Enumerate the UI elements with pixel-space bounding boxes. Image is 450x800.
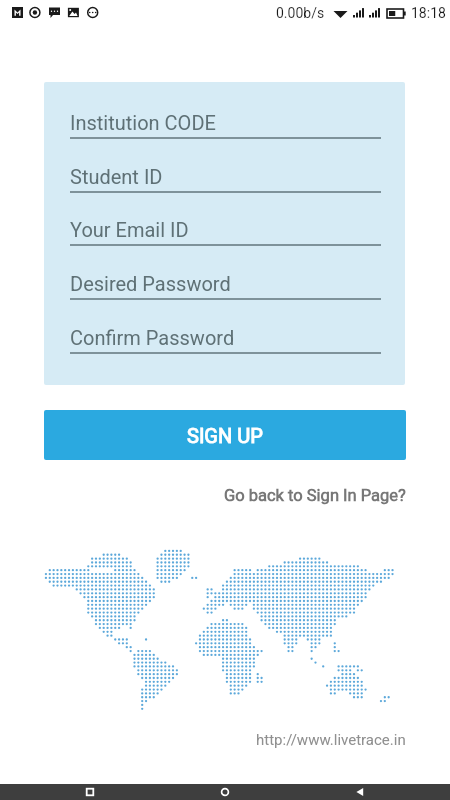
button[interactable]: SIGN UP (44, 410, 406, 460)
staticText: Your Email ID (70, 218, 189, 241)
button[interactable]: Home (150, 784, 300, 800)
staticText: 0.00b/s (276, 5, 325, 21)
staticText: 18:18 (411, 5, 446, 21)
button[interactable]: Back (300, 784, 450, 800)
staticText: SIGN UP (187, 424, 263, 447)
staticText: http://www.livetrace.in (256, 731, 406, 749)
button[interactable]: Go back to Sign In Page? (224, 486, 450, 505)
staticText: Go back to Sign In Page? (224, 486, 406, 505)
staticText: Student ID (70, 165, 163, 188)
staticText: Institution CODE (70, 111, 216, 134)
staticText: Desired Password (70, 272, 231, 295)
button[interactable]: Recent apps (0, 784, 150, 800)
staticText: Confirm Password (70, 326, 235, 349)
